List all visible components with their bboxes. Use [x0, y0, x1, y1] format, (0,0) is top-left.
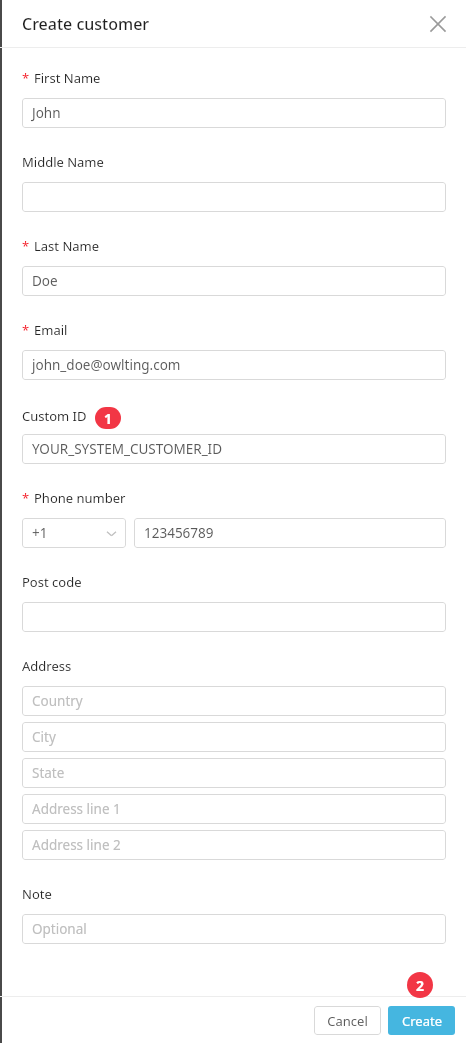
- staticText: Last Name: [34, 237, 100, 255]
- staticText: Address: [22, 657, 72, 675]
- button[interactable]: +1: [22, 518, 126, 548]
- button[interactable]: John: [22, 98, 446, 128]
- staticText: Create: [402, 1012, 442, 1030]
- staticText: State: [32, 764, 65, 782]
- button[interactable]: Address line 1: [22, 794, 446, 824]
- staticText: Phone number: [34, 489, 126, 507]
- staticText: Address line 1: [32, 800, 121, 818]
- button[interactable]: Doe: [22, 266, 446, 296]
- staticText: 2: [416, 976, 425, 995]
- button[interactable]: [22, 182, 446, 212]
- staticText: *: [22, 69, 30, 87]
- staticText: City: [32, 728, 56, 746]
- button[interactable]: Cancel: [314, 1006, 381, 1035]
- staticText: Middle Name: [22, 153, 104, 171]
- button[interactable]: City: [22, 722, 446, 752]
- button[interactable]: Optional: [22, 914, 446, 944]
- button[interactable]: Create: [388, 1006, 455, 1035]
- staticText: Cancel: [327, 1012, 368, 1030]
- staticText: *: [22, 237, 30, 255]
- button[interactable]: [22, 602, 446, 632]
- staticText: *: [22, 489, 30, 507]
- button[interactable]: Country: [22, 686, 446, 716]
- staticText: john_doe@owlting.com: [32, 356, 181, 374]
- staticText: Create customer: [22, 13, 150, 35]
- staticText: 123456789: [144, 524, 214, 542]
- staticText: First Name: [34, 69, 101, 87]
- staticText: 1: [104, 409, 113, 428]
- staticText: Note: [22, 885, 52, 903]
- staticText: Optional: [32, 920, 87, 938]
- button[interactable]: Close: [422, 8, 454, 40]
- staticText: John: [32, 104, 61, 122]
- staticText: Custom ID: [22, 407, 87, 425]
- staticText: +1: [32, 524, 48, 542]
- staticText: *: [22, 321, 30, 339]
- staticText: Email: [34, 321, 68, 339]
- button[interactable]: YOUR_SYSTEM_CUSTOMER_ID: [22, 434, 446, 464]
- button[interactable]: 123456789: [134, 518, 446, 548]
- button[interactable]: Address line 2: [22, 830, 446, 860]
- button[interactable]: State: [22, 758, 446, 788]
- staticText: Address line 2: [32, 836, 121, 854]
- staticText: Country: [32, 692, 83, 710]
- staticText: Doe: [32, 272, 58, 290]
- staticText: Post code: [22, 573, 82, 591]
- button[interactable]: john_doe@owlting.com: [22, 350, 446, 380]
- staticText: YOUR_SYSTEM_CUSTOMER_ID: [32, 440, 223, 458]
